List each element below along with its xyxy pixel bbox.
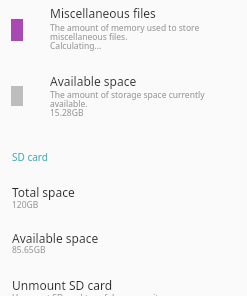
staticText: Miscellaneous files (50, 5, 156, 21)
staticText: Unmount SD card to safely remove it (12, 294, 159, 296)
button[interactable]: Unmount SD card (0, 265, 247, 296)
staticText: Total space (12, 184, 75, 200)
staticText: 85.65GB (12, 246, 46, 255)
button[interactable]: Available space (0, 66, 247, 136)
button[interactable]: Miscellaneous files (0, 0, 247, 66)
staticText: The amount of storage space currently av… (50, 91, 205, 118)
staticText: 120GB (12, 201, 39, 210)
staticText: Available space (12, 230, 99, 246)
staticText: SD card (12, 150, 48, 164)
staticText: The amount of memory used to store misce… (50, 24, 200, 51)
staticText: Available space (50, 73, 137, 89)
button[interactable]: Available space (0, 218, 247, 265)
staticText: Unmount SD card (12, 277, 113, 293)
button[interactable]: Total space (0, 172, 247, 218)
